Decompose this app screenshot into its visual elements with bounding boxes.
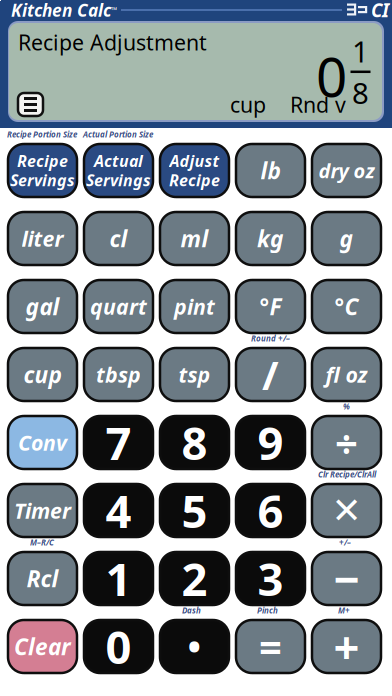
staticText: Recipe <box>169 169 220 191</box>
staticText: cl <box>109 223 127 253</box>
staticText: kg <box>257 223 284 253</box>
button[interactable]: 7 <box>84 416 153 469</box>
button[interactable]: + <box>312 620 381 673</box>
staticText: lb <box>260 155 280 185</box>
staticText: °C <box>334 291 358 321</box>
staticText: 5 <box>181 480 207 541</box>
button[interactable]: cl <box>84 212 153 265</box>
staticText: 3 <box>257 548 283 609</box>
staticText: M–R/C <box>30 537 54 548</box>
staticText: Recipe <box>17 150 68 171</box>
button[interactable]: pint <box>160 280 229 333</box>
button[interactable]: kg <box>236 212 305 265</box>
staticText: = <box>259 620 282 673</box>
button[interactable]: Actual <box>84 144 153 197</box>
staticText: 8 <box>352 73 369 112</box>
button[interactable]: ✕ <box>312 484 381 537</box>
button[interactable]: liter <box>8 212 77 265</box>
button[interactable]: 9 <box>236 416 305 469</box>
button[interactable]: g <box>312 212 381 265</box>
button[interactable]: 5 <box>160 484 229 537</box>
button[interactable]: tsp <box>160 348 229 401</box>
staticText: 0 <box>316 39 347 112</box>
staticText: Actual Portion Size <box>83 129 153 140</box>
staticText: Recipe Portion Size <box>7 129 77 140</box>
button[interactable]: 6 <box>236 484 305 537</box>
staticText: Clear <box>14 631 71 661</box>
staticText: 0 <box>105 616 131 677</box>
staticText: °F <box>259 291 281 321</box>
staticText: 9 <box>257 412 283 473</box>
staticText: Timer <box>14 496 71 525</box>
staticText: / <box>262 348 279 401</box>
staticText: +/– <box>339 537 351 548</box>
button[interactable]: = <box>236 620 305 673</box>
staticText: • <box>187 623 201 670</box>
button[interactable]: Clear <box>8 620 77 673</box>
staticText: 8 <box>181 412 207 473</box>
staticText: tsp <box>178 360 210 389</box>
staticText: quart <box>90 292 147 321</box>
staticText: Recipe Adjustment <box>18 28 207 56</box>
staticText: 1 <box>105 548 131 609</box>
button[interactable]: 4 <box>84 484 153 537</box>
button[interactable]: fl oz <box>312 348 381 401</box>
staticText: 1 <box>352 32 369 71</box>
staticText: Kitchen Calc <box>11 0 111 21</box>
staticText: ÷ <box>335 416 358 469</box>
staticText: g <box>339 223 353 253</box>
staticText: liter <box>21 224 63 253</box>
staticText: Actual <box>94 150 143 171</box>
button[interactable]: • <box>160 620 229 673</box>
button[interactable]: 2 <box>160 552 229 605</box>
staticText: 4 <box>105 480 131 541</box>
button[interactable]: / <box>236 348 305 401</box>
staticText: + <box>333 616 359 677</box>
staticText: dry oz <box>318 157 374 184</box>
staticText: pint <box>174 292 215 321</box>
button[interactable]: °C <box>312 280 381 333</box>
button[interactable]: quart <box>84 280 153 333</box>
staticText: ✕ <box>331 490 361 531</box>
button[interactable]: ÷ <box>312 416 381 469</box>
staticText: Rcl <box>26 563 58 593</box>
button[interactable]: Recipe <box>8 144 77 197</box>
button[interactable]: cup <box>8 348 77 401</box>
staticText: CI <box>371 0 389 22</box>
button[interactable]: 3 <box>236 552 305 605</box>
button[interactable]: gal <box>8 280 77 333</box>
staticText: tbsp <box>96 360 141 389</box>
button[interactable]: 8 <box>160 416 229 469</box>
button[interactable]: Timer <box>8 484 77 537</box>
button[interactable]: 1 <box>84 552 153 605</box>
button[interactable]: tbsp <box>84 348 153 401</box>
staticText: 7 <box>105 412 131 473</box>
button[interactable]: ml <box>160 212 229 265</box>
button[interactable]: Menu <box>18 93 43 116</box>
staticText: Dash <box>182 605 201 616</box>
staticText: Pinch <box>257 605 278 616</box>
button[interactable]: lb <box>236 144 305 197</box>
staticText: 2 <box>181 548 207 609</box>
staticText: Servings <box>10 169 75 191</box>
staticText: cup <box>230 90 266 119</box>
button[interactable]: Rcl <box>8 552 77 605</box>
button[interactable]: − <box>312 552 381 605</box>
button[interactable]: dry oz <box>312 144 381 197</box>
staticText: Conv <box>18 428 67 457</box>
staticText: − <box>333 548 359 609</box>
button[interactable]: Adjust <box>160 144 229 197</box>
staticText: cup <box>23 359 61 389</box>
staticText: ml <box>180 223 208 253</box>
button[interactable]: °F <box>236 280 305 333</box>
staticText: Rnd v <box>290 90 346 119</box>
staticText: fl oz <box>325 360 367 389</box>
button[interactable]: Conv <box>8 416 77 469</box>
staticText: Adjust <box>169 150 219 171</box>
staticText: Round +/– <box>251 333 290 344</box>
button[interactable]: 0 <box>84 620 153 673</box>
staticText: gal <box>25 291 59 321</box>
staticText: Clr Recipe/ClrAll <box>318 469 376 480</box>
staticText: % <box>343 401 350 412</box>
staticText: ™ <box>111 5 117 15</box>
